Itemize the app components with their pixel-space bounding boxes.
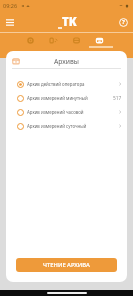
button[interactable]: ЧТЕНИЕ АРХИВА <box>16 258 117 272</box>
staticText: Архивы <box>54 57 80 66</box>
button[interactable]: Menu <box>2 14 18 30</box>
staticText: 517 <box>113 95 122 102</box>
button[interactable]: Архив измерений минутный <box>6 91 127 105</box>
button[interactable]: Help <box>115 14 131 30</box>
button[interactable]: Архив измерений суточный <box>6 119 127 133</box>
button[interactable]: Meters <box>65 33 88 48</box>
staticText: Архив измерений суточный <box>27 123 87 129</box>
staticText: Архив измерений часовой <box>27 109 84 115</box>
button[interactable]: Settings <box>19 33 42 48</box>
staticText: 09:26 <box>3 2 18 9</box>
button[interactable]: Архив действий оператора <box>6 77 127 91</box>
staticText: Архив действий оператора <box>27 81 85 87</box>
button[interactable]: Архив измерений часовой <box>6 105 127 119</box>
staticText: ? <box>122 18 125 26</box>
staticText: ЧТЕНИЕ АРХИВА <box>43 261 90 269</box>
button[interactable]: Devices <box>42 33 65 48</box>
staticText: Архив измерений минутный <box>27 95 88 101</box>
button[interactable]: Archives <box>88 33 111 48</box>
staticText: TK <box>62 14 77 30</box>
